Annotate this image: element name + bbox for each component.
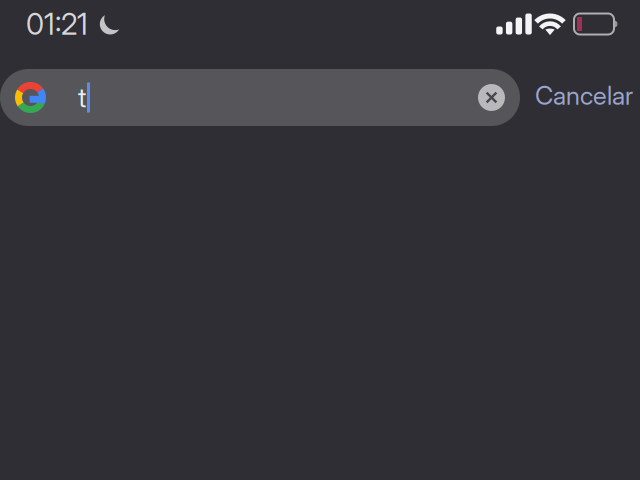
button[interactable]: Cancelar (528, 69, 640, 126)
staticText: Cancelar (535, 80, 633, 111)
staticText: t (78, 81, 86, 114)
button[interactable]: t (0, 69, 520, 126)
staticText: 01:21 (26, 6, 88, 42)
